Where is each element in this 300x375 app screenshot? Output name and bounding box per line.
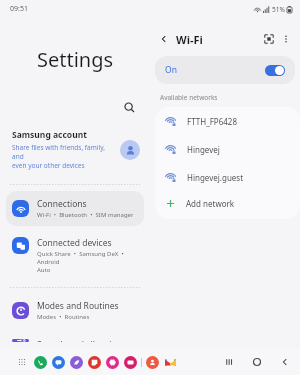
- staticText: Hingevej.guest: [187, 172, 244, 183]
- button[interactable]: Add network: [155, 191, 300, 219]
- staticText: Settings: [0, 46, 150, 73]
- staticText: Share files with friends, family, and ev…: [12, 143, 114, 170]
- staticText: Connected devices: [37, 237, 112, 249]
- button[interactable]: Notes: [88, 356, 101, 369]
- staticText: 09:51: [10, 4, 28, 14]
- button[interactable]: Connections: [6, 191, 144, 226]
- button[interactable]: Messages: [52, 356, 65, 369]
- staticText: Wi-Fi • Bluetooth • SIM manager: [37, 211, 134, 219]
- staticText: Hingevej: [187, 144, 220, 155]
- button[interactable]: Modes and Routines: [0, 294, 150, 327]
- button[interactable]: More options: [278, 31, 294, 47]
- staticText: Samsung account: [12, 129, 87, 141]
- staticText: Sounds and vibration: [37, 339, 122, 342]
- button[interactable]: Back: [278, 355, 292, 369]
- staticText: FTTH_FP6428: [187, 116, 237, 127]
- staticText: On: [165, 64, 177, 76]
- button[interactable]: Gmail: [164, 356, 177, 369]
- button[interactable]: Home: [250, 355, 264, 369]
- button[interactable]: Phone: [34, 356, 47, 369]
- button[interactable]: Hingevej.guest: [155, 163, 300, 191]
- button[interactable]: Internet: [70, 356, 83, 369]
- staticText: Quick Share • Samsung DeX • Android Auto: [37, 250, 142, 274]
- staticText: Wi-Fi: [176, 32, 203, 47]
- staticText: Available networks: [160, 93, 218, 102]
- button[interactable]: Camera: [124, 356, 137, 369]
- button[interactable]: Photos: [106, 356, 119, 369]
- staticText: Modes and Routines: [37, 300, 119, 312]
- button[interactable]: Scan QR code: [260, 30, 278, 48]
- button[interactable]: Connected devices: [0, 230, 150, 281]
- staticText: 51%: [272, 5, 285, 14]
- button[interactable]: Back: [156, 31, 172, 47]
- button[interactable]: FTTH_FP6428: [155, 107, 300, 135]
- staticText: Add network: [186, 198, 235, 209]
- button[interactable]: Samsung account: [0, 127, 150, 176]
- staticText: Connections: [37, 198, 87, 210]
- button[interactable]: All apps: [16, 356, 28, 368]
- button[interactable]: On: [155, 56, 295, 84]
- button[interactable]: Contacts: [146, 356, 159, 369]
- button[interactable]: Sounds and vibration: [0, 333, 150, 348]
- staticText: Modes • Routines: [37, 313, 90, 321]
- button[interactable]: Recent apps: [222, 355, 236, 369]
- button[interactable]: Hingevej: [155, 135, 300, 163]
- button[interactable]: Search settings: [120, 98, 138, 116]
